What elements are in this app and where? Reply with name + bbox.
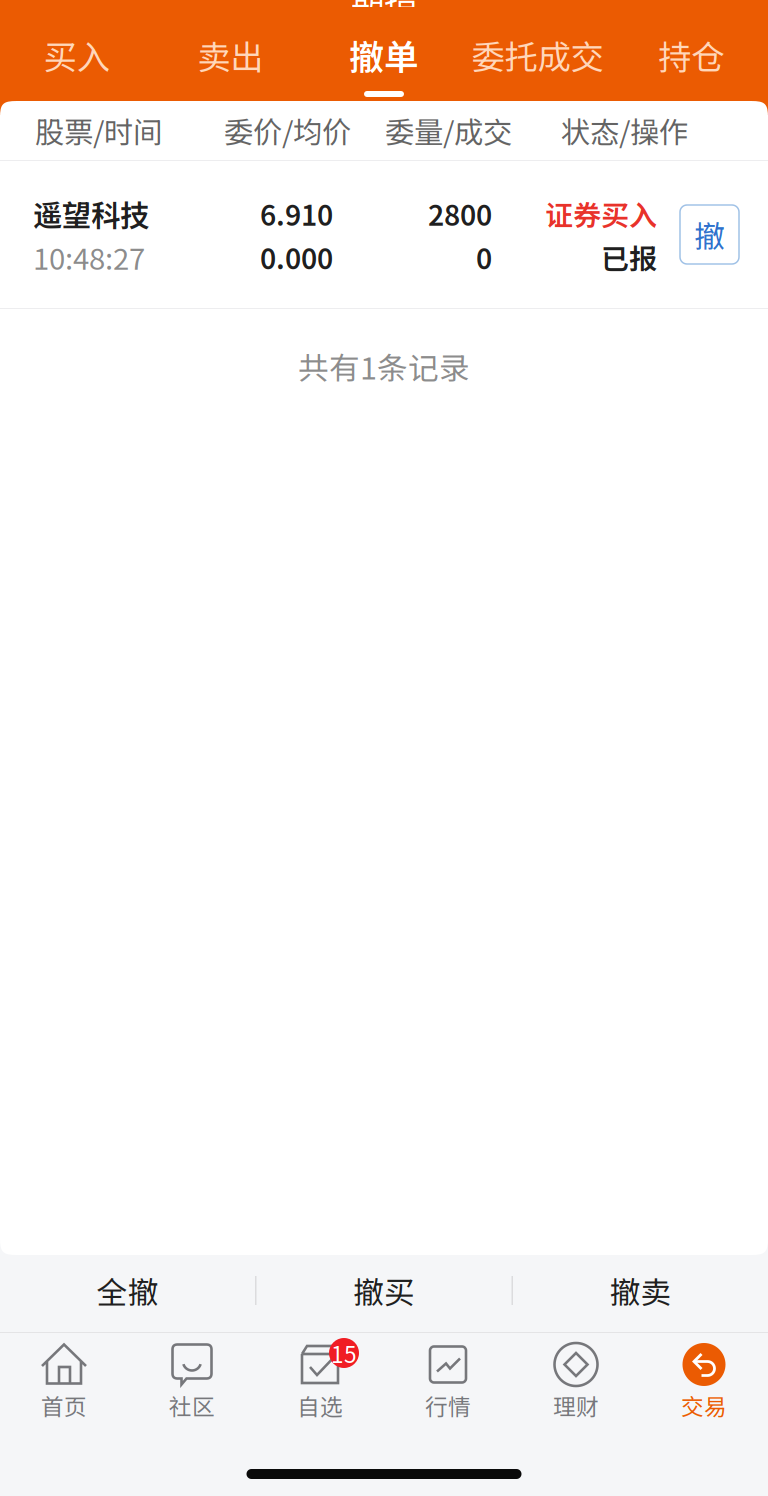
staticText: 2800 xyxy=(428,193,492,234)
button[interactable]: 撤 xyxy=(680,205,739,264)
staticText: 撤买 xyxy=(353,1268,415,1313)
staticText: 委量/成交 xyxy=(385,109,512,152)
button[interactable]: 社区 xyxy=(128,1343,256,1422)
staticText: 共有1条记录 xyxy=(298,344,470,388)
staticText: 6.910 xyxy=(260,193,333,234)
staticText: 持仓 xyxy=(658,31,724,79)
button[interactable]: 委托成交 xyxy=(461,0,614,101)
staticText: 委价/均价 xyxy=(224,109,351,152)
staticText: 自选 xyxy=(297,1389,343,1422)
staticText: 15 xyxy=(331,1337,357,1369)
staticText: 股票/时间 xyxy=(35,109,162,152)
staticText: 交易 xyxy=(681,1389,727,1422)
staticText: 理财 xyxy=(553,1389,599,1422)
staticText: 0.000 xyxy=(260,237,333,277)
staticText: 全撤 xyxy=(96,1268,158,1313)
staticText: 证券买入 xyxy=(545,193,657,234)
button[interactable]: 撤卖 xyxy=(513,1255,768,1326)
button[interactable]: 行情 xyxy=(384,1343,512,1422)
staticText: 社区 xyxy=(169,1389,215,1422)
staticText: 撤单 xyxy=(349,30,419,80)
button[interactable]: 买入 xyxy=(0,0,154,101)
staticText: 0 xyxy=(476,237,492,277)
button[interactable]: 交易 xyxy=(640,1343,768,1422)
staticText: 已报 xyxy=(601,237,657,277)
staticText: 首页 xyxy=(41,1389,87,1422)
staticText: 行情 xyxy=(425,1389,471,1422)
staticText: 期指 xyxy=(351,0,417,22)
staticText: 撤卖 xyxy=(609,1268,671,1313)
staticText: 委托成交 xyxy=(472,31,604,79)
button[interactable]: 全撤 xyxy=(0,1255,255,1326)
button[interactable]: 15 xyxy=(256,1343,384,1422)
staticText: 买入 xyxy=(44,31,110,79)
button[interactable]: 理财 xyxy=(512,1343,640,1422)
button[interactable]: 持仓 xyxy=(614,0,768,101)
staticText: 遥望科技 xyxy=(33,192,149,235)
staticText: 卖出 xyxy=(197,31,263,79)
staticText: 10:48:27 xyxy=(33,236,145,278)
staticText: 撤 xyxy=(694,212,725,257)
button[interactable]: 撤单 xyxy=(307,0,461,101)
button[interactable]: 首页 xyxy=(0,1343,128,1422)
button[interactable]: 遥望科技 xyxy=(0,161,768,308)
staticText: 状态/操作 xyxy=(561,109,688,152)
button[interactable]: 撤买 xyxy=(256,1255,511,1326)
button[interactable]: 卖出 xyxy=(154,0,307,101)
